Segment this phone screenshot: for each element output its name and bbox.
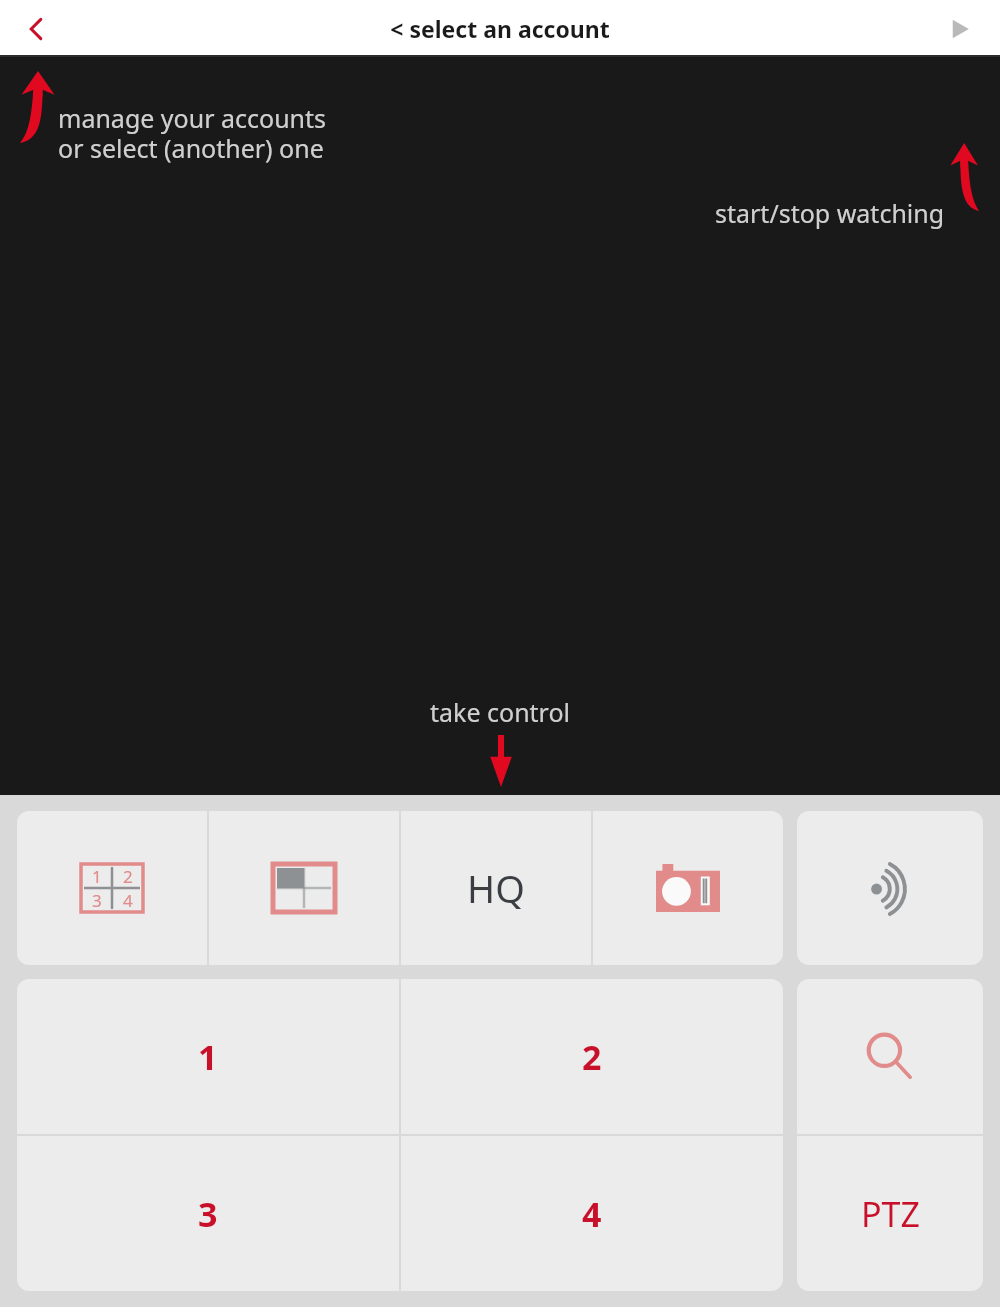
staticText: take control (430, 695, 571, 729)
button[interactable]: PTZ (797, 1136, 983, 1291)
button[interactable]: Zoom (797, 979, 983, 1134)
button[interactable]: 4 (401, 1136, 783, 1291)
staticText: 3 (198, 1191, 218, 1237)
staticText: 1 (92, 865, 102, 888)
staticText: 2 (582, 1034, 602, 1080)
staticText: 4 (123, 889, 133, 912)
button[interactable]: Quad view (17, 811, 207, 965)
button[interactable]: Snapshot (593, 811, 783, 965)
button[interactable]: 1 (17, 979, 399, 1134)
button[interactable]: 2 (401, 979, 783, 1134)
staticText: 4 (582, 1191, 602, 1237)
staticText: HQ (467, 862, 525, 914)
staticText: 3 (92, 889, 102, 912)
staticText: < select an account (390, 13, 610, 44)
staticText: 1 (198, 1034, 218, 1080)
staticText: 2 (123, 865, 133, 888)
button[interactable]: 3 (17, 1136, 399, 1291)
staticText: start/stop watching (715, 196, 945, 230)
staticText: manage your accounts or select (another)… (58, 101, 327, 165)
button[interactable]: Layout (209, 811, 399, 965)
button[interactable]: Back (8, 1, 64, 57)
button[interactable]: Play (932, 1, 988, 57)
staticText: PTZ (861, 1191, 920, 1237)
button[interactable]: High quality (401, 811, 591, 965)
button[interactable]: Audio broadcast (797, 811, 983, 965)
